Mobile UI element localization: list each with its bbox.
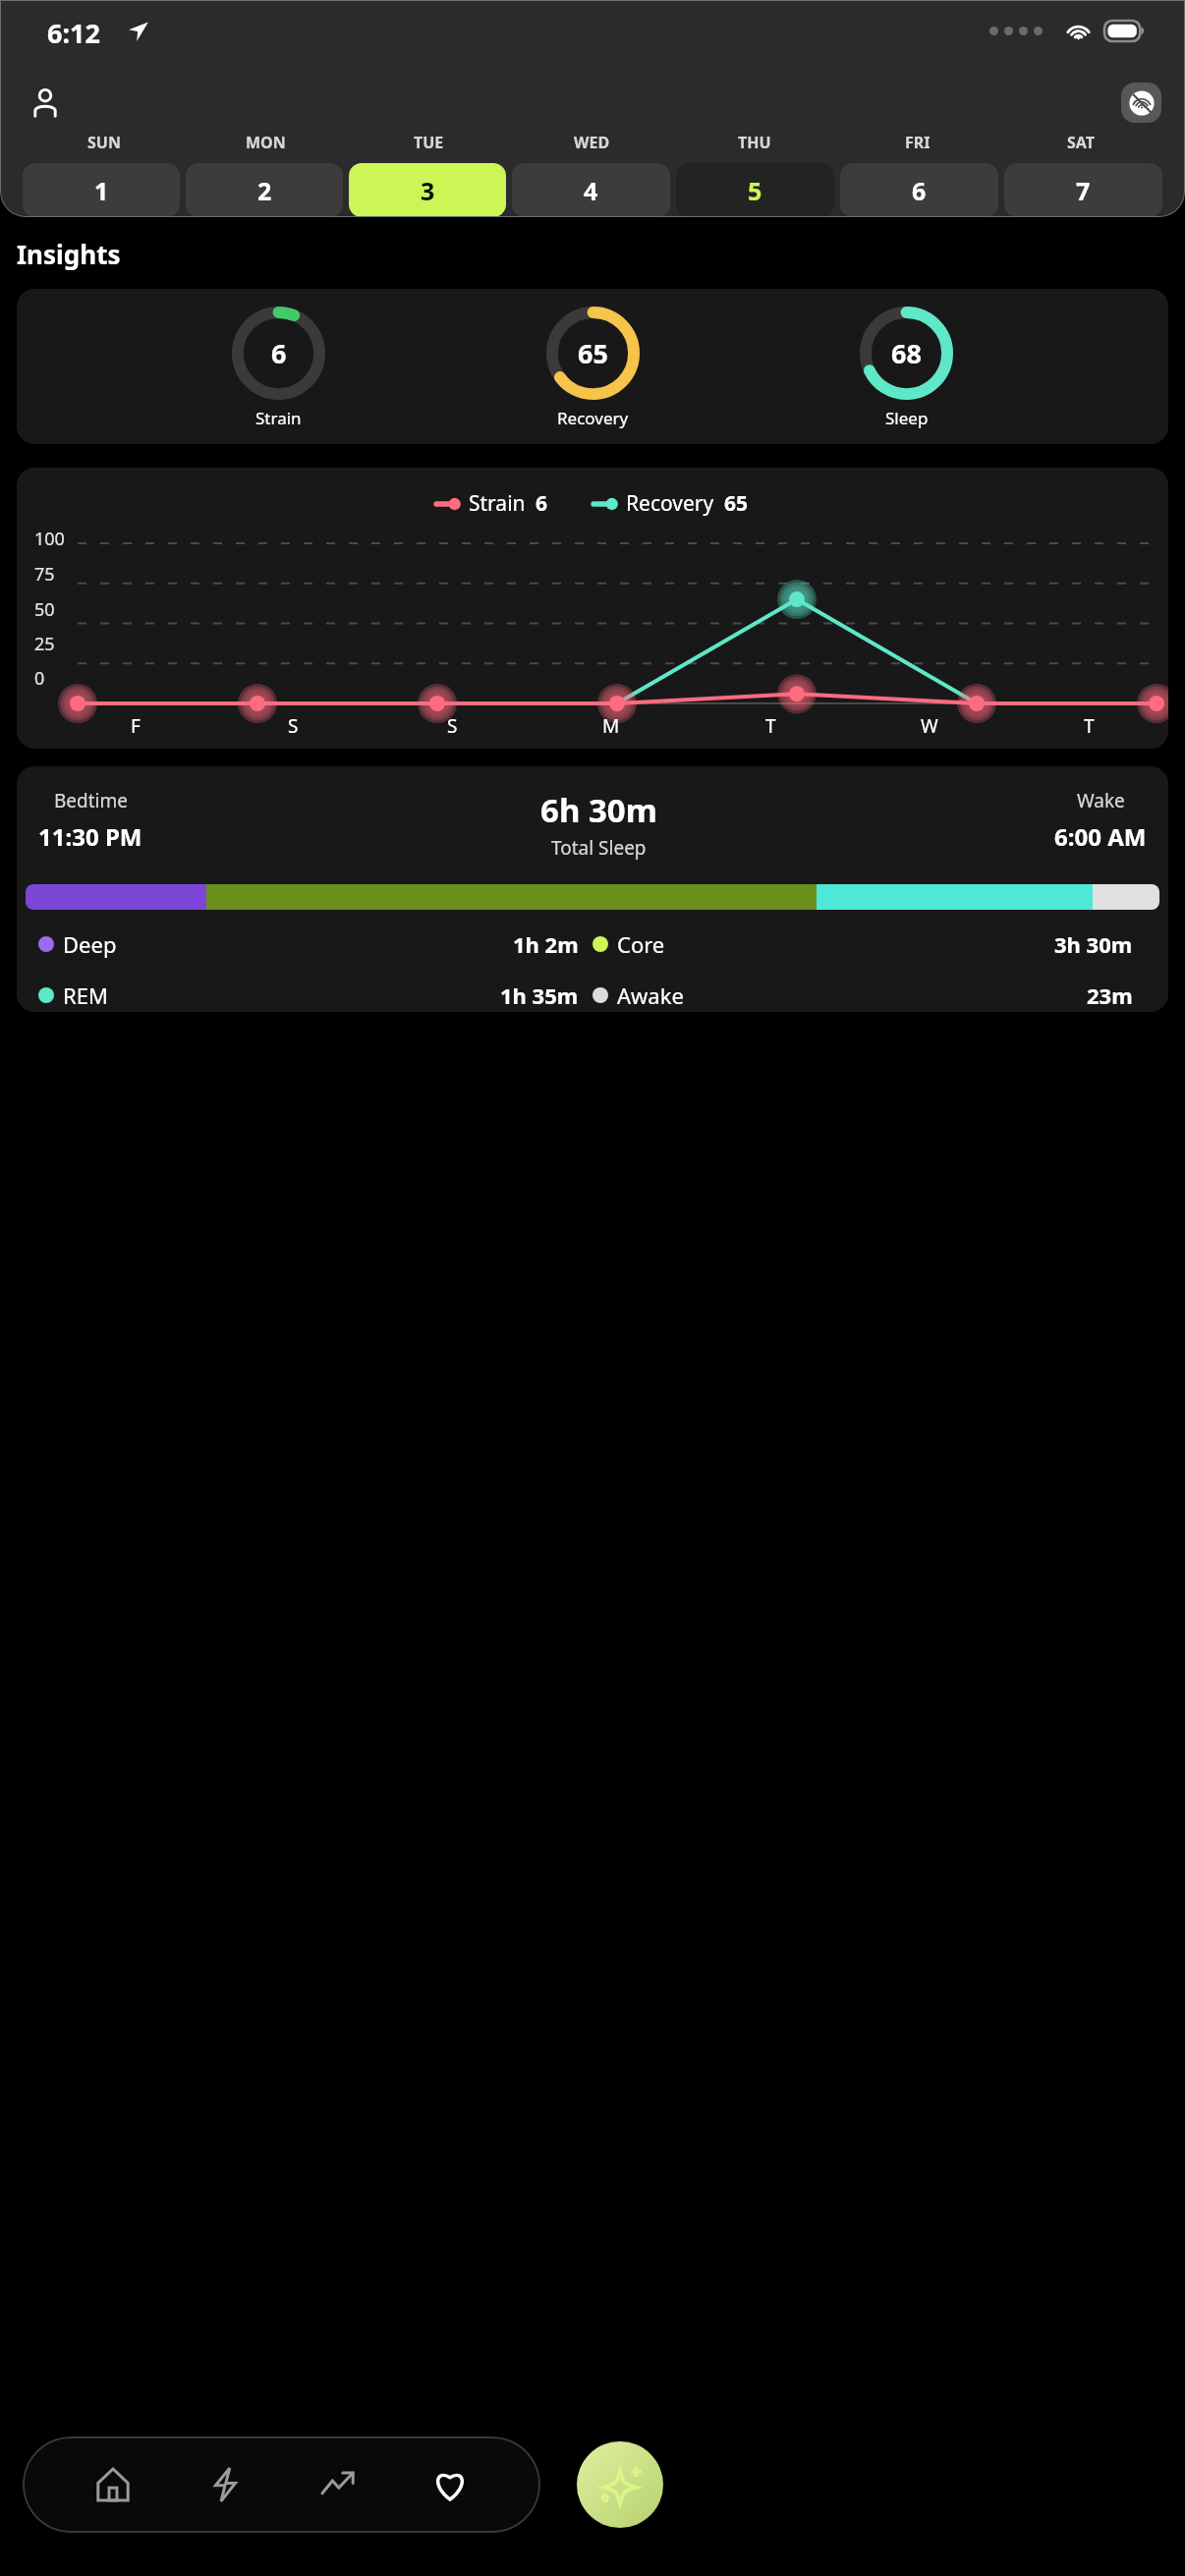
button[interactable]: Home: [77, 2448, 149, 2521]
button[interactable]: AI Coach: [577, 2441, 663, 2528]
staticText: 23m: [1087, 980, 1133, 1010]
staticText: 6: [271, 335, 287, 371]
staticText: T: [765, 713, 776, 739]
staticText: Bedtime: [54, 788, 128, 813]
staticText: TUE: [414, 132, 444, 153]
staticText: REM: [63, 980, 108, 1010]
staticText: 4: [584, 174, 598, 207]
staticText: Total Sleep: [551, 835, 647, 861]
staticText: SUN: [87, 132, 121, 153]
button[interactable]: 2: [186, 163, 343, 217]
staticText: 3: [421, 174, 435, 207]
button[interactable]: 7: [1004, 163, 1162, 217]
button[interactable]: Trends: [302, 2448, 374, 2521]
staticText: F: [131, 713, 141, 739]
staticText: Deep: [63, 929, 117, 959]
button[interactable]: Offline: [1121, 83, 1161, 123]
staticText: Recovery: [557, 407, 629, 429]
staticText: Sleep: [885, 407, 929, 429]
button[interactable]: 65: [540, 307, 646, 429]
staticText: 25: [34, 632, 55, 656]
staticText: Insights: [17, 237, 121, 271]
staticText: 75: [34, 562, 55, 587]
staticText: 6: [536, 489, 548, 518]
staticText: 1h 35m: [500, 980, 579, 1010]
staticText: 6:00 AM: [1054, 820, 1147, 853]
button[interactable]: Profile: [24, 81, 67, 124]
staticText: 11:30 PM: [38, 820, 142, 853]
staticText: 65: [724, 489, 749, 518]
staticText: 68: [891, 335, 922, 371]
staticText: 6h 30m: [540, 788, 657, 832]
staticText: 3h 30m: [1054, 929, 1133, 959]
staticText: M: [602, 713, 620, 739]
button[interactable]: 4: [512, 163, 670, 217]
staticText: 7: [1076, 174, 1091, 207]
button[interactable]: 6: [840, 163, 998, 217]
staticText: 1h 2m: [513, 929, 579, 959]
staticText: S: [447, 713, 458, 739]
staticText: S: [288, 713, 299, 739]
staticText: 1: [94, 174, 109, 207]
staticText: FRI: [905, 132, 931, 153]
staticText: 6: [912, 174, 927, 207]
staticText: WED: [574, 132, 610, 153]
staticText: 5: [748, 174, 762, 207]
staticText: 100: [34, 527, 65, 551]
staticText: Core: [617, 929, 665, 959]
staticText: T: [1084, 713, 1095, 739]
button[interactable]: Health: [414, 2448, 486, 2521]
button[interactable]: 6: [226, 307, 331, 429]
button[interactable]: Strain: [189, 2448, 261, 2521]
staticText: 50: [34, 597, 55, 622]
staticText: Awake: [617, 980, 684, 1010]
staticText: MON: [246, 132, 286, 153]
button[interactable]: 68: [854, 307, 959, 429]
button[interactable]: 1: [23, 163, 180, 217]
button[interactable]: 5: [676, 163, 834, 217]
staticText: W: [921, 713, 938, 739]
staticText: Recovery: [626, 489, 714, 518]
staticText: 2: [257, 174, 272, 207]
staticText: THU: [738, 132, 771, 153]
staticText: 65: [578, 335, 608, 371]
staticText: 6:12: [47, 15, 100, 51]
button[interactable]: 3: [349, 163, 506, 217]
staticText: Strain: [255, 407, 302, 429]
staticText: 0: [34, 666, 45, 691]
staticText: Wake: [1077, 788, 1125, 813]
staticText: SAT: [1067, 132, 1096, 153]
staticText: Strain: [469, 489, 526, 518]
